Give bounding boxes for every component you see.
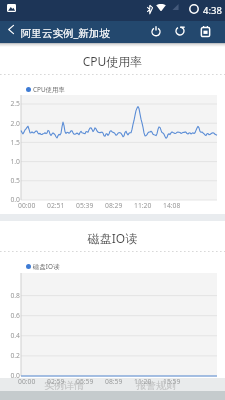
button[interactable]: Power (147, 21, 164, 43)
staticText: CPU使用率 (33, 85, 65, 94)
staticText: 阿里云实例_新加坡 (21, 26, 110, 40)
staticText: 08:29 (105, 201, 123, 210)
staticText: 02:59 (47, 377, 65, 386)
staticText: 0.6 (0, 311, 20, 320)
staticText: 02:51 (47, 201, 65, 210)
staticText: 0.5 (0, 176, 20, 185)
staticText: 0.2 (0, 351, 20, 360)
staticText: CPU使用率 (0, 53, 225, 69)
staticText: 1.5 (0, 138, 20, 147)
staticText: 14:08 (163, 201, 181, 210)
staticText: 0.4 (0, 331, 20, 340)
button[interactable]: 实例详情 (42, 379, 86, 390)
button[interactable]: 报警规则 (134, 379, 178, 390)
staticText: 00:00 (18, 201, 36, 210)
staticText: 0.0 (0, 371, 20, 380)
staticText: 05:59 (76, 377, 94, 386)
staticText: 0.8 (0, 291, 20, 300)
button[interactable]: Back (0, 21, 20, 43)
staticText: 4:38 (203, 4, 222, 17)
staticText: 2.0 (0, 119, 20, 128)
staticText: 05:39 (76, 201, 94, 210)
staticText: 08:59 (105, 377, 123, 386)
button[interactable]: Save (196, 21, 215, 43)
staticText: 15:59 (163, 377, 181, 386)
staticText: 磁盘IO读 (0, 230, 225, 246)
staticText: 磁盘IO读 (33, 262, 60, 271)
staticText: 1.0 (0, 157, 20, 166)
button[interactable]: Refresh (171, 21, 188, 43)
staticText: 实例详情 (44, 379, 84, 390)
staticText: 11:20 (134, 377, 152, 386)
staticText: 0.0 (0, 195, 20, 204)
staticText: 报警规则 (136, 379, 176, 390)
staticText: 11:20 (134, 201, 152, 210)
staticText: 00:00 (18, 377, 36, 386)
staticText: 2.5 (0, 99, 20, 108)
